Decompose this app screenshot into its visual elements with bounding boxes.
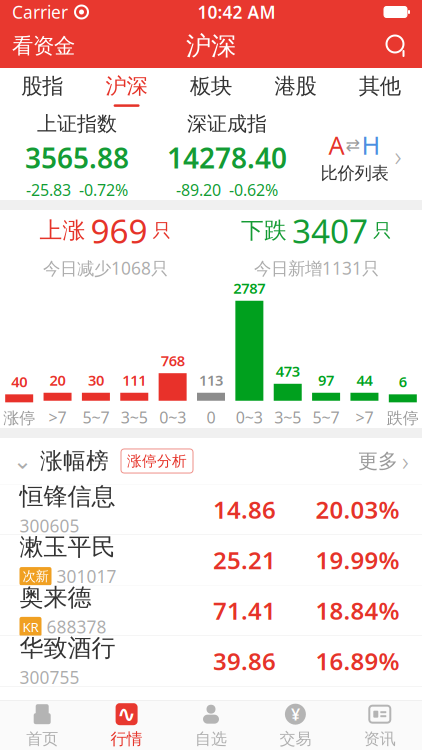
staticText: 涨幅榜 (40, 447, 109, 475)
button[interactable]: 上证指数 (2, 114, 152, 198)
staticText: 深证成指 (187, 111, 267, 136)
button[interactable]: 深证成指 (152, 114, 302, 198)
button[interactable]: 恒锋信息 (0, 484, 422, 535)
staticText: 768 (161, 351, 185, 370)
staticText: › (402, 444, 409, 478)
staticText: KR (22, 618, 38, 636)
staticText: 跌停 (387, 408, 419, 428)
button[interactable]: 自选 (169, 701, 253, 750)
staticText: 漱玉平民 (19, 532, 115, 562)
staticText: 资讯 (364, 729, 396, 749)
staticText: 自选 (195, 729, 227, 749)
button[interactable]: A H 比价列表 (302, 114, 420, 198)
staticText: 只 (152, 219, 171, 242)
staticText: H (361, 128, 380, 162)
button[interactable]: 沪深 (84, 68, 169, 112)
staticText: >7 (48, 407, 66, 428)
staticText: 次新 (22, 568, 48, 584)
staticText: 下跌 (241, 217, 287, 244)
button[interactable]: ∿ (84, 701, 169, 750)
staticText: -89.20 (176, 179, 221, 200)
staticText: 涨停分析 (127, 452, 187, 470)
staticText: 473 (276, 361, 300, 381)
staticText: 39.86 (213, 645, 276, 677)
staticText: 上证指数 (37, 111, 117, 136)
staticText: 18.84% (315, 595, 399, 626)
staticText: 969 (90, 208, 147, 253)
staticText: 300755 (19, 666, 79, 689)
button[interactable]: 奥来德 (0, 585, 422, 636)
button[interactable]: 华致酒行 (0, 636, 422, 686)
staticText: 20.03% (315, 494, 399, 525)
staticText: 交易 (279, 729, 311, 749)
staticText: 沪深 (186, 30, 236, 61)
staticText: 0~3 (236, 407, 263, 428)
button[interactable]: 首页 (0, 701, 84, 750)
staticText: 301017 (56, 565, 116, 588)
staticText: ⇄ (345, 135, 360, 155)
staticText: 更多 (358, 449, 398, 473)
staticText: A (328, 128, 344, 162)
staticText: 16.89% (315, 645, 399, 677)
staticText: 20 (49, 370, 65, 390)
staticText: 3565.88 (25, 139, 129, 176)
button[interactable]: 港股 (253, 68, 338, 112)
staticText: ⌄ (13, 448, 32, 474)
staticText: 首页 (26, 729, 58, 749)
button[interactable]: 漱玉平民 (0, 535, 422, 585)
staticText: 0~3 (159, 407, 186, 428)
staticText: 5~7 (82, 407, 109, 428)
staticText: 华致酒行 (19, 633, 115, 663)
staticText: 25.21 (213, 544, 276, 576)
button[interactable]: 股指 (0, 68, 84, 112)
button[interactable]: Search (372, 24, 422, 68)
staticText: 只 (373, 219, 392, 242)
staticText: 10:42 AM (197, 0, 275, 23)
button[interactable]: 资讯 (338, 701, 422, 750)
button[interactable]: 看资金 (0, 24, 87, 68)
staticText: 688378 (46, 615, 106, 638)
staticText: Carrier (12, 0, 68, 23)
button[interactable]: ¥ (253, 701, 338, 750)
staticText: 行情 (111, 729, 143, 749)
staticText: 0 (206, 407, 215, 428)
staticText: 71.41 (213, 595, 276, 626)
staticText: 30 (88, 370, 104, 390)
staticText: 6 (399, 372, 407, 391)
staticText: 111 (122, 370, 146, 390)
staticText: 沪深 (106, 73, 148, 99)
staticText: 今日减少1068只 (43, 257, 168, 280)
staticText: 300605 (19, 514, 79, 537)
staticText: -0.72% (79, 179, 128, 200)
button[interactable]: 其他 (338, 68, 422, 112)
staticText: 44 (356, 370, 372, 390)
button[interactable]: 板块 (169, 68, 253, 112)
staticText: 港股 (274, 73, 316, 99)
staticText: >7 (355, 407, 373, 428)
staticText: 14278.40 (167, 139, 287, 176)
staticText: 2787 (233, 278, 265, 298)
staticText: 今日新增1131只 (254, 257, 379, 280)
button[interactable]: 更多 (358, 444, 422, 478)
staticText: › (394, 138, 401, 174)
staticText: 14.86 (213, 494, 276, 525)
staticText: 板块 (190, 73, 232, 99)
staticText: 97 (318, 370, 334, 390)
staticText: 看资金 (12, 33, 75, 59)
staticText: 比价列表 (320, 163, 388, 184)
staticText: 40 (11, 372, 27, 391)
staticText: 其他 (359, 73, 401, 99)
staticText: ¥ (291, 703, 300, 725)
staticText: 19.99% (315, 544, 399, 576)
staticText: 上涨 (39, 217, 85, 244)
button[interactable]: 涨停分析 (121, 449, 193, 473)
staticText: 恒锋信息 (19, 482, 115, 511)
staticText: 3~5 (121, 407, 148, 428)
staticText: ∿ (117, 701, 136, 727)
staticText: 涨停 (3, 408, 35, 428)
staticText: 113 (199, 370, 223, 390)
button[interactable]: ⌄ (0, 447, 109, 475)
staticText: 股指 (21, 73, 63, 99)
staticText: 3407 (292, 208, 368, 253)
